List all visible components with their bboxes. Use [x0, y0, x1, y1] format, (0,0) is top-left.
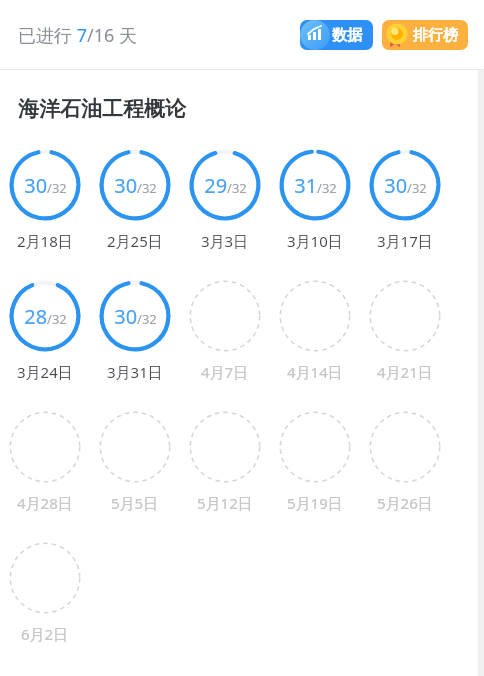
- staticText: 3月24日: [17, 362, 73, 382]
- staticText: 4月14日: [287, 362, 343, 382]
- staticText: 3月17日: [377, 231, 433, 251]
- button[interactable]: 30/32: [360, 148, 450, 251]
- button[interactable]: 30/32: [90, 279, 180, 382]
- staticText: 4月21日: [377, 362, 433, 382]
- staticText: 4月7日: [201, 362, 249, 382]
- button[interactable]: 数据: [300, 20, 373, 50]
- button[interactable]: 5月19日: [270, 410, 360, 513]
- staticText: 28/32: [24, 303, 67, 330]
- button[interactable]: 5月12日: [180, 410, 270, 513]
- button[interactable]: 30/32: [90, 148, 180, 251]
- staticText: 6月2日: [21, 624, 69, 644]
- staticText: 5月12日: [197, 493, 253, 513]
- staticText: 30/32: [114, 172, 157, 199]
- button[interactable]: 5月26日: [360, 410, 450, 513]
- staticText: 4月28日: [17, 493, 73, 513]
- staticText: 30/32: [114, 303, 157, 330]
- staticText: 30/32: [384, 172, 427, 199]
- button[interactable]: 排行榜: [382, 20, 468, 50]
- staticText: 已进行 7/16 天: [18, 23, 137, 48]
- button[interactable]: 4月28日: [0, 410, 90, 513]
- staticText: 29/32: [204, 172, 247, 199]
- staticText: 3月10日: [287, 231, 343, 251]
- button[interactable]: 31/32: [270, 148, 360, 251]
- staticText: 5月26日: [377, 493, 433, 513]
- button[interactable]: 4月21日: [360, 279, 450, 382]
- button[interactable]: 5月5日: [90, 410, 180, 513]
- staticText: 海洋石油工程概论: [18, 96, 186, 122]
- staticText: 数据: [332, 26, 362, 45]
- button[interactable]: 6月2日: [0, 541, 90, 644]
- staticText: 5月19日: [287, 493, 343, 513]
- staticText: 2月18日: [17, 231, 73, 251]
- staticText: 2月25日: [107, 231, 163, 251]
- button[interactable]: 30/32: [0, 148, 90, 251]
- button[interactable]: 28/32: [0, 279, 90, 382]
- button[interactable]: 4月14日: [270, 279, 360, 382]
- staticText: 3月31日: [107, 362, 163, 382]
- button[interactable]: 4月7日: [180, 279, 270, 382]
- staticText: 30/32: [24, 172, 67, 199]
- staticText: 排行榜: [413, 26, 458, 45]
- staticText: 5月5日: [111, 493, 159, 513]
- staticText: 31/32: [294, 172, 337, 199]
- button[interactable]: 29/32: [180, 148, 270, 251]
- staticText: 3月3日: [201, 231, 249, 251]
